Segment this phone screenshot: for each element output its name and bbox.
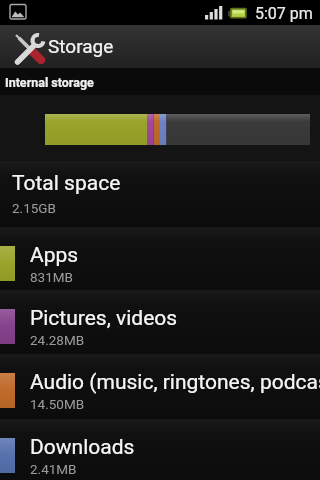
staticText: Apps	[30, 243, 79, 268]
staticText: Storage	[48, 35, 114, 57]
staticText: 2.15GB	[12, 200, 56, 216]
staticText: 5:07 pm	[255, 4, 313, 23]
staticText: 831MB	[30, 269, 73, 285]
button[interactable]: Total space	[0, 161, 320, 227]
staticText: Downloads	[30, 435, 135, 460]
staticText: 14.50MB	[30, 396, 85, 412]
staticText: Internal storage	[5, 75, 94, 90]
staticText: Total space	[12, 171, 121, 196]
staticText: Pictures, videos	[30, 306, 178, 331]
button[interactable]: Apps	[0, 227, 320, 290]
button[interactable]: Downloads	[0, 419, 320, 480]
staticText: 2.41MB	[30, 461, 77, 477]
staticText: 24.28MB	[30, 332, 85, 348]
button[interactable]: Pictures, videos	[0, 290, 320, 354]
button[interactable]: Audio (music, ringtones, podcasts)	[0, 354, 320, 419]
button[interactable]: Storage	[0, 25, 320, 68]
staticText: Audio (music, ringtones, podcasts)	[30, 370, 320, 395]
